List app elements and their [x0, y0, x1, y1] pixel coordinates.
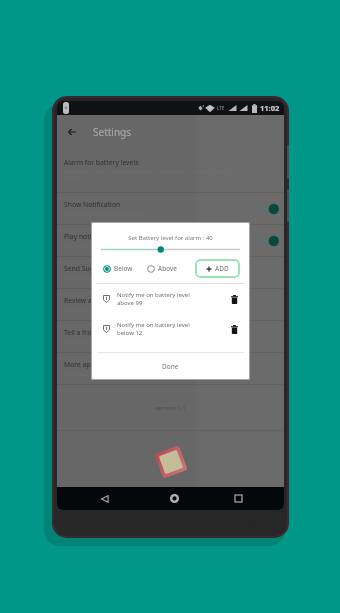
button[interactable]: Done — [91, 353, 250, 380]
button[interactable]: Delete — [229, 294, 240, 305]
button[interactable]: Alarm for battery levels — [57, 148, 284, 192]
staticText: 11:02 — [260, 103, 280, 113]
staticText: Above — [158, 264, 177, 273]
staticText: Set Battery level for alarm : 40 — [91, 234, 250, 242]
staticText: Check out my other apps — [64, 370, 125, 377]
staticText: Done — [162, 362, 179, 371]
staticText: Play a sound when alarm goes off — [64, 242, 147, 249]
button[interactable]: Review app — [57, 288, 284, 320]
button[interactable]: Toggle — [257, 202, 279, 216]
staticText: Settings — [93, 125, 132, 139]
staticText: Show Notification — [64, 200, 121, 209]
button[interactable]: Below — [103, 264, 133, 273]
button[interactable]: Battery level slider — [101, 245, 240, 254]
staticText: Send Suggestions — [64, 264, 121, 273]
button[interactable]: Delete — [229, 324, 240, 335]
staticText: Alarm for battery levels — [64, 158, 139, 167]
button[interactable]: Back — [92, 487, 118, 510]
button[interactable]: Tell a friend — [57, 320, 284, 352]
staticText: Send Suggestions to the developer — [64, 274, 149, 281]
staticText: version 1.1 — [155, 404, 186, 412]
button[interactable]: Notify me on battery level below 12 — [91, 314, 250, 344]
staticText: LTE — [217, 105, 225, 111]
staticText: Notify me on battery level below 12 — [117, 321, 225, 337]
staticText: Below — [114, 264, 133, 273]
button[interactable]: Above — [147, 264, 177, 273]
staticText: Review app — [64, 296, 101, 305]
staticText: Introduce this app to a friend — [64, 338, 136, 345]
button[interactable]: Home — [161, 487, 187, 510]
button[interactable]: More apps — [57, 352, 284, 384]
button[interactable]: Notify me on battery level above 99 — [91, 284, 250, 314]
button[interactable]: Play notification sound — [57, 224, 284, 256]
button[interactable]: Show Notification — [57, 192, 284, 224]
button[interactable]: Toggle — [257, 234, 279, 248]
button[interactable]: ADD — [195, 259, 240, 278]
staticText: ADD — [215, 264, 229, 273]
staticText: More apps — [64, 360, 98, 369]
staticText: Notify me on battery level above 99 — [117, 291, 225, 307]
staticText: Please rate this app — [64, 306, 112, 313]
button[interactable]: Recent apps — [225, 487, 251, 510]
staticText: Play notification sound — [64, 232, 137, 241]
button[interactable]: Navigate up — [64, 124, 80, 140]
staticText: Tell a friend — [64, 328, 102, 337]
button[interactable]: Send Suggestions — [57, 256, 284, 288]
